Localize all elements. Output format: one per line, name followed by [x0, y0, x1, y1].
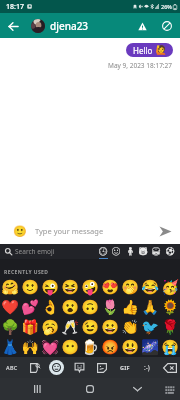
- staticText: 👏: [121, 319, 139, 336]
- button[interactable]: Search emoji: [3, 246, 14, 257]
- button[interactable]: 🥂: [60, 317, 80, 337]
- button[interactable]: Stickers: [90, 357, 113, 378]
- staticText: 💕: [21, 299, 39, 316]
- button[interactable]: 🌌: [140, 337, 160, 357]
- button[interactable]: 😶: [60, 337, 80, 357]
- staticText: ABC: [6, 364, 18, 371]
- button[interactable]: 🌳: [0, 317, 20, 337]
- staticText: 👍: [121, 299, 139, 316]
- button[interactable]: Profile photo: [31, 19, 45, 33]
- staticText: 🌌: [141, 339, 159, 356]
- staticText: Type your message: [35, 226, 104, 236]
- button[interactable]: Block: [157, 16, 177, 36]
- button[interactable]: 🙏: [140, 297, 160, 317]
- staticText: 🙋: [155, 45, 167, 56]
- button[interactable]: Emoji category: [164, 244, 177, 259]
- button[interactable]: 🙃: [80, 297, 100, 317]
- staticText: 🙂: [21, 279, 39, 296]
- button[interactable]: Emoji: [45, 357, 68, 378]
- button[interactable]: Emoji category: [150, 244, 163, 259]
- button[interactable]: 🥱: [40, 317, 60, 337]
- button[interactable]: 😆: [60, 277, 80, 297]
- button[interactable]: 😀: [100, 317, 120, 337]
- staticText: 🙌: [21, 339, 39, 356]
- staticText: 🤪: [81, 279, 99, 296]
- button[interactable]: 🤪: [80, 277, 100, 297]
- button[interactable]: Back: [3, 16, 23, 36]
- button[interactable]: 😂: [140, 277, 160, 297]
- button[interactable]: 🎁: [20, 317, 40, 337]
- staticText: Hello: [133, 45, 153, 56]
- button[interactable]: 💓: [40, 337, 60, 357]
- button[interactable]: AR emoji: [68, 357, 91, 378]
- button[interactable]: Send: [156, 222, 174, 240]
- button[interactable]: 😉: [80, 317, 100, 337]
- staticText: 🌷: [101, 299, 119, 316]
- staticText: 🙂: [111, 247, 122, 256]
- staticText: 🙂: [13, 225, 26, 238]
- button[interactable]: Report: [132, 16, 152, 36]
- staticText: 18:17: [6, 2, 24, 12]
- button[interactable]: 👏: [120, 317, 140, 337]
- staticText: 🌳: [1, 319, 19, 336]
- button[interactable]: Hide keyboard: [127, 379, 147, 399]
- button[interactable]: Emoji category: [97, 244, 110, 259]
- button[interactable]: 🌻: [160, 297, 180, 317]
- button[interactable]: 🐦: [140, 317, 160, 337]
- staticText: 🥳: [161, 279, 179, 296]
- staticText: GIF: [120, 364, 130, 371]
- button[interactable]: 🌹: [160, 317, 180, 337]
- staticText: 🙃: [81, 299, 99, 316]
- staticText: 💓: [41, 339, 59, 356]
- button[interactable]: Recents: [27, 379, 47, 399]
- button[interactable]: 🤗: [0, 277, 20, 297]
- button[interactable]: Emoji category: [110, 244, 123, 259]
- button[interactable]: 😡: [100, 337, 120, 357]
- button[interactable]: 🥳: [160, 277, 180, 297]
- button[interactable]: 🍺: [80, 337, 100, 357]
- button[interactable]: Emoji keyboard: [13, 225, 26, 238]
- button[interactable]: 🤭: [120, 277, 140, 297]
- staticText: 🎁: [21, 319, 39, 336]
- button[interactable]: 💕: [20, 297, 40, 317]
- staticText: 😉: [81, 319, 99, 336]
- button[interactable]: 😃: [120, 337, 140, 357]
- staticText: 😀: [101, 319, 119, 336]
- button[interactable]: Sticker search: [23, 357, 46, 378]
- staticText: 😶: [61, 339, 79, 356]
- staticText: ⚽: [165, 247, 176, 256]
- staticText: 😜: [41, 279, 59, 296]
- button[interactable]: Emoji category: [124, 244, 137, 259]
- button[interactable]: 🌷: [100, 297, 120, 317]
- staticText: 🥂: [61, 319, 79, 336]
- staticText: 🐻: [138, 247, 149, 256]
- button[interactable]: 😜: [40, 277, 60, 297]
- button[interactable]: Change keyboard: [160, 379, 180, 399]
- button[interactable]: 😭: [160, 337, 180, 357]
- button[interactable]: 👌: [40, 297, 60, 317]
- button[interactable]: Home: [80, 379, 100, 399]
- button[interactable]: 👍: [120, 297, 140, 317]
- button[interactable]: 😍: [100, 277, 120, 297]
- staticText: 🍔: [151, 247, 162, 256]
- staticText: 🙏: [141, 299, 159, 316]
- button[interactable]: 😮: [60, 297, 80, 317]
- staticText: 🤗: [1, 279, 19, 296]
- staticText: 😮: [61, 299, 79, 316]
- button[interactable]: Hello: [133, 43, 167, 57]
- button[interactable]: Backspace: [158, 357, 180, 378]
- button[interactable]: Emoji category: [137, 244, 150, 259]
- button[interactable]: GIF: [113, 357, 136, 378]
- staticText: 26%: [161, 3, 172, 10]
- staticText: 🌹: [161, 319, 179, 336]
- button[interactable]: ❤️: [0, 297, 20, 317]
- button[interactable]: 🙂: [20, 277, 40, 297]
- staticText: djena23: [50, 19, 89, 33]
- button[interactable]: 🙌: [20, 337, 40, 357]
- staticText: 🤭: [121, 279, 139, 296]
- button[interactable]: 👗: [0, 337, 20, 357]
- staticText: 🌻: [161, 299, 179, 316]
- button[interactable]: Alphabet keyboard: [0, 357, 23, 378]
- button[interactable]: Emoticons: [135, 357, 158, 378]
- staticText: 😂: [141, 279, 159, 296]
